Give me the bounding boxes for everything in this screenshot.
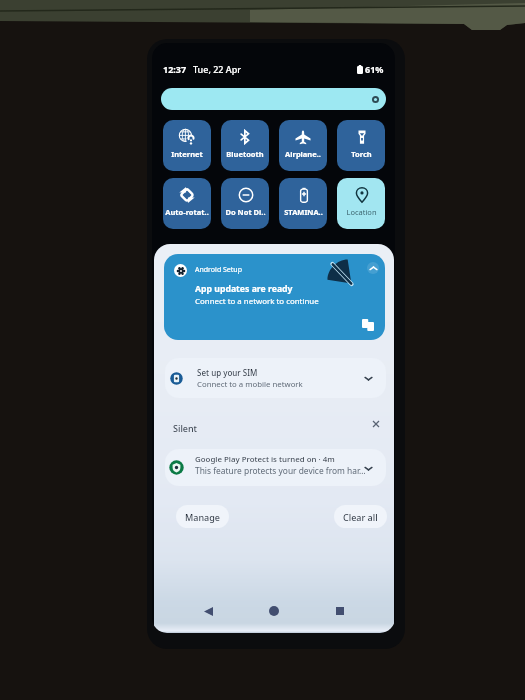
staticText: Connect to a mobile network xyxy=(197,379,303,390)
button[interactable]: Collapse xyxy=(367,262,379,274)
button[interactable]: Set up your SIM xyxy=(165,358,386,398)
button[interactable]: Google Play Protect is turned on · 4m xyxy=(165,449,386,486)
staticText: 61% xyxy=(365,63,384,75)
button[interactable]: Recents xyxy=(331,602,349,620)
staticText: Tue, 22 Apr xyxy=(193,63,242,75)
button[interactable]: Manage xyxy=(176,505,229,528)
button[interactable]: Clear all xyxy=(334,505,387,528)
staticText: Auto-rotat.. xyxy=(165,207,209,217)
button[interactable]: Do Not Di.. xyxy=(221,178,269,229)
staticText: Location xyxy=(346,207,377,217)
button[interactable]: Auto-rotat.. xyxy=(163,178,211,229)
staticText: Clear all xyxy=(343,511,378,523)
button[interactable]: Airplane.. xyxy=(279,120,327,171)
staticText: Google Play Protect is turned on · 4m xyxy=(195,454,335,465)
staticText: Silent xyxy=(173,422,198,434)
staticText: Airplane.. xyxy=(285,149,321,159)
staticText: Bluetooth xyxy=(226,149,264,159)
button[interactable]: Torch xyxy=(337,120,385,171)
staticText: This feature protects your device from h… xyxy=(195,465,366,476)
button[interactable]: Dismiss xyxy=(368,416,384,432)
staticText: Torch xyxy=(351,149,372,159)
button[interactable]: Internet xyxy=(163,120,211,171)
button[interactable] xyxy=(161,88,386,110)
button[interactable]: STAMINA.. xyxy=(279,178,327,229)
staticText: Set up your SIM xyxy=(197,367,258,378)
button[interactable]: Android Setup xyxy=(164,254,385,340)
staticText: 12:37 xyxy=(163,63,187,75)
button[interactable]: Home xyxy=(265,602,283,620)
button[interactable]: Expand xyxy=(359,459,377,477)
staticText: Do Not Di.. xyxy=(225,207,266,217)
button[interactable]: Location xyxy=(337,178,385,229)
staticText: Internet xyxy=(171,149,203,159)
staticText: Connect to a network to continue xyxy=(195,296,319,307)
button[interactable]: Bluetooth xyxy=(221,120,269,171)
button[interactable]: Back xyxy=(199,602,217,620)
staticText: Android Setup xyxy=(195,265,242,275)
staticText: Manage xyxy=(185,511,220,523)
staticText: STAMINA.. xyxy=(284,207,323,217)
staticText: App updates are ready xyxy=(195,283,293,295)
button[interactable]: Expand xyxy=(359,369,377,387)
